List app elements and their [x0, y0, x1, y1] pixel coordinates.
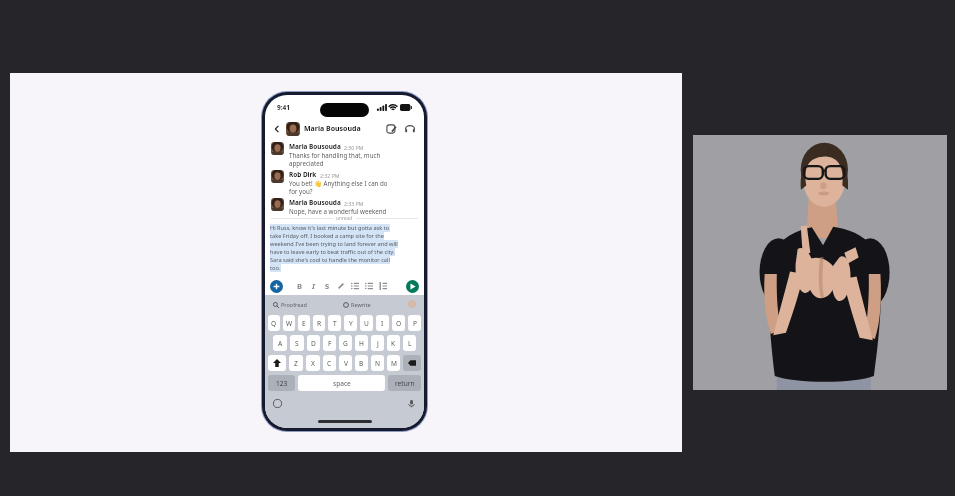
staticText: N — [375, 359, 381, 368]
button[interactable]: O — [392, 315, 405, 331]
button[interactable]: Z — [289, 355, 303, 371]
staticText: Nope, have a wonderful weekend — [289, 207, 387, 215]
staticText: R — [317, 319, 322, 328]
button[interactable]: Quote — [376, 279, 390, 293]
staticText: V — [344, 359, 348, 368]
button[interactable]: J — [371, 335, 384, 351]
button[interactable]: G — [339, 335, 352, 351]
staticText: X — [311, 359, 315, 368]
staticText: U — [364, 319, 369, 328]
staticText: B — [359, 359, 364, 368]
button[interactable]: R — [313, 315, 325, 331]
button[interactable]: B — [355, 355, 368, 371]
staticText: 123 — [276, 379, 288, 388]
button[interactable]: Rewrite — [343, 301, 371, 308]
staticText: F — [328, 339, 332, 348]
button[interactable]: Huddle — [404, 123, 416, 135]
staticText: Hi Russ, know it's last minute but gotta… — [270, 224, 390, 232]
staticText: weekend I've been trying to land forever… — [270, 240, 398, 248]
button[interactable]: Emoji — [273, 399, 282, 408]
button[interactable]: W — [283, 315, 295, 331]
staticText: 2:33 PM — [344, 200, 364, 207]
staticText: H — [359, 339, 364, 348]
button[interactable]: Ordered list — [348, 279, 362, 293]
staticText: You bet! 👋 Anything else I can do — [289, 179, 388, 187]
button[interactable]: Q — [268, 315, 280, 331]
staticText: Z — [294, 359, 298, 368]
staticText: A — [278, 339, 283, 348]
staticText: S — [325, 281, 330, 291]
button[interactable]: New message — [385, 123, 397, 135]
staticText: W — [286, 319, 293, 328]
button[interactable]: A — [273, 335, 287, 351]
button[interactable]: E — [298, 315, 310, 331]
staticText: M — [391, 359, 397, 368]
staticText: appreciated — [289, 159, 324, 167]
button[interactable]: H — [355, 335, 368, 351]
button[interactable]: Y — [344, 315, 357, 331]
staticText: 9:41 — [277, 103, 290, 112]
staticText: space — [333, 379, 351, 388]
button[interactable]: return — [388, 375, 421, 391]
button[interactable]: S — [290, 335, 304, 351]
button[interactable]: C — [323, 355, 336, 371]
staticText: K — [391, 339, 396, 348]
button[interactable]: 123 — [268, 375, 295, 391]
staticText: have to leave early to beat traffic out … — [270, 248, 395, 256]
staticText: J — [377, 339, 379, 348]
staticText: E — [302, 319, 306, 328]
staticText: Maria Bousouda — [289, 142, 341, 151]
button[interactable]: Proofread — [273, 301, 307, 308]
staticText: Q — [271, 319, 277, 328]
staticText: C — [327, 359, 332, 368]
staticText: Proofread — [281, 301, 307, 308]
staticText: Maria Bousouda — [304, 124, 361, 134]
staticText: unread — [336, 215, 353, 222]
button[interactable]: space — [298, 375, 385, 391]
staticText: for you? — [289, 187, 313, 195]
button[interactable]: Shift — [268, 355, 286, 371]
button[interactable]: Add attachment — [270, 280, 283, 293]
staticText: I — [312, 281, 315, 291]
staticText: P — [413, 319, 417, 328]
staticText: Thanks for handling that, much — [289, 151, 381, 159]
button[interactable]: Dictate — [407, 399, 416, 408]
button[interactable]: P — [408, 315, 421, 331]
staticText: Rob Dirk — [289, 170, 317, 179]
staticText: Maria Bousouda — [289, 198, 341, 207]
button[interactable]: N — [371, 355, 384, 371]
button[interactable]: S — [320, 279, 334, 293]
button[interactable]: I — [376, 315, 389, 331]
button[interactable]: T — [328, 315, 341, 331]
staticText: D — [311, 339, 316, 348]
button[interactable]: Send — [406, 280, 419, 293]
button[interactable]: B — [292, 279, 306, 293]
button[interactable]: M — [387, 355, 400, 371]
staticText: S — [295, 339, 299, 348]
staticText: 2:32 PM — [320, 172, 340, 179]
button[interactable]: F — [323, 335, 336, 351]
button[interactable]: V — [339, 355, 352, 371]
button[interactable]: L — [403, 335, 416, 351]
staticText: 2:30 PM — [344, 144, 364, 151]
button[interactable]: K — [387, 335, 400, 351]
button[interactable]: Profile — [408, 300, 416, 308]
button[interactable]: Back — [271, 123, 283, 135]
staticText: Y — [349, 319, 353, 328]
button[interactable]: X — [306, 355, 320, 371]
button[interactable]: U — [360, 315, 373, 331]
staticText: O — [396, 319, 402, 328]
staticText: B — [297, 281, 302, 291]
staticText: G — [343, 339, 348, 348]
staticText: return — [395, 379, 415, 388]
staticText: I — [381, 319, 384, 328]
staticText: too. — [270, 264, 281, 272]
staticText: L — [408, 339, 412, 348]
staticText: T — [333, 319, 337, 328]
button[interactable]: I — [306, 279, 320, 293]
staticText: Sara said she's cool to handle the monit… — [270, 256, 390, 264]
button[interactable]: Link — [334, 279, 348, 293]
button[interactable]: D — [307, 335, 320, 351]
button[interactable]: Bulleted list — [362, 279, 376, 293]
button[interactable]: Backspace — [403, 355, 421, 371]
